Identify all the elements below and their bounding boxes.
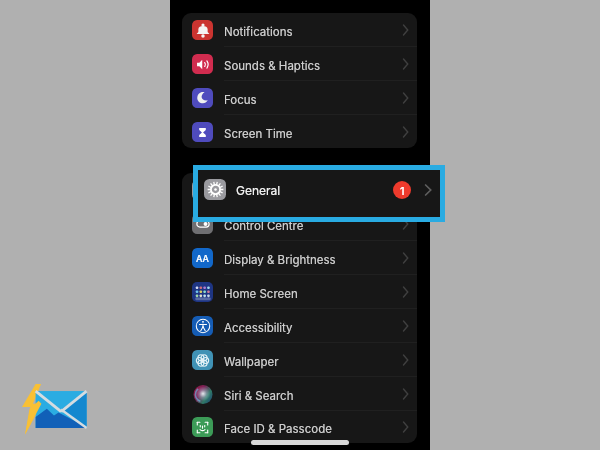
staticText: Accessibility bbox=[224, 321, 293, 335]
button[interactable]: General bbox=[182, 173, 417, 207]
staticText: Face ID & Passcode bbox=[224, 422, 332, 436]
staticText: Display & Brightness bbox=[224, 253, 336, 267]
staticText: Notifications bbox=[224, 25, 293, 39]
staticText: Wallpaper bbox=[224, 355, 279, 369]
staticText: General bbox=[224, 185, 267, 199]
staticText: Sounds & Haptics bbox=[224, 59, 321, 73]
button[interactable]: General bbox=[198, 170, 440, 217]
button[interactable]: Face ID & Passcode bbox=[182, 411, 417, 443]
staticText: Control Centre bbox=[224, 219, 304, 233]
staticText: AA bbox=[196, 253, 209, 264]
staticText: Focus bbox=[224, 93, 257, 107]
staticText: Screen Time bbox=[224, 127, 293, 141]
staticText: Home Screen bbox=[224, 287, 298, 301]
button[interactable]: Wallpaper bbox=[182, 343, 417, 377]
staticText: 1 bbox=[400, 184, 405, 197]
button[interactable]: Accessibility bbox=[182, 309, 417, 343]
button[interactable]: Home Screen bbox=[182, 275, 417, 309]
button[interactable]: Notifications bbox=[182, 13, 417, 47]
button[interactable]: Sounds & Haptics bbox=[182, 47, 417, 81]
other: Email logo bbox=[21, 383, 89, 435]
button[interactable]: Control Centre bbox=[182, 207, 417, 241]
button[interactable]: Focus bbox=[182, 81, 417, 115]
button[interactable]: Screen Time bbox=[182, 115, 417, 148]
staticText: General bbox=[236, 183, 281, 198]
button[interactable]: Siri & Search bbox=[182, 377, 417, 411]
button[interactable]: AA bbox=[182, 241, 417, 275]
staticText: Siri & Search bbox=[224, 389, 294, 403]
